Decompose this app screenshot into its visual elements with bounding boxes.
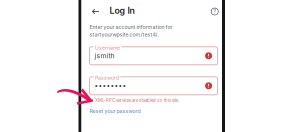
staticText: Log In — [109, 5, 134, 16]
button[interactable]: Help — [206, 1, 222, 20]
staticText: •••••••• — [94, 82, 126, 90]
staticText: startyourwpsite.com/test4/. — [89, 31, 158, 38]
staticText: Password — [95, 75, 119, 81]
staticText: XML-RPC services are disabled on this si… — [95, 98, 179, 103]
staticText: ? — [213, 8, 216, 15]
button[interactable]: Reset your password — [89, 107, 140, 115]
staticText: Enter your account information for — [89, 24, 172, 30]
staticText: jsmith — [94, 52, 114, 60]
staticText: Reset your password — [89, 108, 140, 114]
button[interactable]: Back — [81, 1, 105, 20]
staticText: Username — [95, 45, 120, 51]
